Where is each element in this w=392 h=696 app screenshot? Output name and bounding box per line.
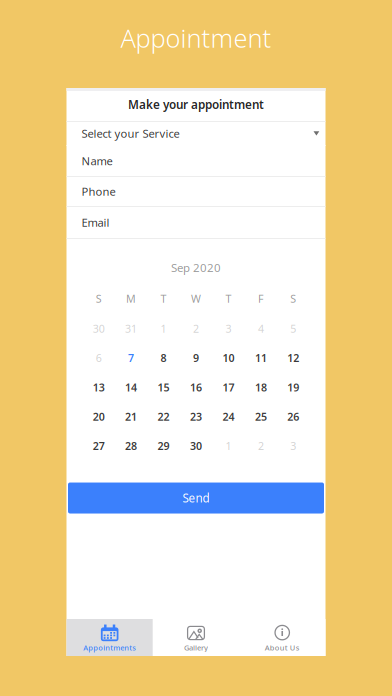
button[interactable]: 12 <box>277 343 310 373</box>
button[interactable]: 24 <box>212 402 245 431</box>
staticText: 23 <box>190 409 202 424</box>
staticText: 21 <box>125 409 137 424</box>
staticText: M <box>126 291 136 306</box>
staticText: 22 <box>158 409 170 424</box>
button[interactable]: 30 <box>180 431 212 460</box>
staticText: 29 <box>158 439 170 453</box>
staticText: 11 <box>255 351 267 365</box>
button[interactable]: 29 <box>147 431 180 460</box>
button[interactable]: 3 <box>212 314 245 343</box>
staticText: Gallery <box>184 642 208 653</box>
staticText: 9 <box>193 351 199 365</box>
staticText: Appointment <box>120 21 271 55</box>
staticText: 19 <box>287 380 299 394</box>
staticText: 28 <box>125 439 137 453</box>
staticText: 16 <box>190 380 202 394</box>
staticText: 4 <box>258 321 264 336</box>
staticText: Make your appointment <box>128 96 264 112</box>
button[interactable]: 25 <box>245 402 277 431</box>
staticText: 24 <box>222 409 234 424</box>
staticText: 2 <box>258 439 264 453</box>
button[interactable]: 8 <box>147 343 180 373</box>
staticText: 27 <box>93 439 105 453</box>
staticText: T <box>161 291 167 306</box>
button[interactable]: Select your Service <box>66 122 325 146</box>
button[interactable]: 31 <box>115 314 147 343</box>
button[interactable]: 16 <box>180 373 212 402</box>
button[interactable]: 2 <box>180 314 212 343</box>
staticText: 26 <box>287 409 299 424</box>
staticText: T <box>225 291 231 306</box>
staticText: 20 <box>93 409 105 424</box>
button[interactable]: 3 <box>277 431 310 460</box>
button[interactable]: 27 <box>82 431 115 460</box>
staticText: 17 <box>222 380 234 394</box>
button[interactable]: Appointments <box>66 619 153 656</box>
button[interactable]: 5 <box>277 314 310 343</box>
button[interactable]: 18 <box>245 373 277 402</box>
button[interactable]: Send <box>68 482 324 513</box>
staticText: 14 <box>125 380 137 394</box>
staticText: About Us <box>265 642 300 653</box>
button[interactable]: 13 <box>82 373 115 402</box>
staticText: F <box>258 291 264 306</box>
button[interactable]: 4 <box>245 314 277 343</box>
button[interactable]: 21 <box>115 402 147 431</box>
staticText: 12 <box>287 351 299 365</box>
staticText: Appointments <box>83 642 136 653</box>
staticText: 2 <box>193 321 199 336</box>
staticText: 25 <box>255 409 267 424</box>
staticText: 1 <box>161 321 167 336</box>
staticText: 31 <box>125 321 137 336</box>
button[interactable]: 15 <box>147 373 180 402</box>
button[interactable]: About Us <box>239 619 325 656</box>
staticText: S <box>96 291 102 306</box>
button[interactable]: 1 <box>147 314 180 343</box>
button[interactable]: 6 <box>82 343 115 373</box>
button[interactable]: 2 <box>245 431 277 460</box>
staticText: 13 <box>93 380 105 394</box>
button[interactable]: 11 <box>245 343 277 373</box>
button[interactable]: 23 <box>180 402 212 431</box>
staticText: 30 <box>190 439 202 453</box>
staticText: 8 <box>161 351 167 365</box>
button[interactable]: 7 <box>115 343 147 373</box>
staticText: 18 <box>255 380 267 394</box>
button[interactable]: 19 <box>277 373 310 402</box>
button[interactable]: Gallery <box>153 619 239 656</box>
staticText: Send <box>182 490 209 506</box>
button[interactable]: 30 <box>82 314 115 343</box>
button[interactable]: 9 <box>180 343 212 373</box>
staticText: 15 <box>158 380 170 394</box>
staticText: 3 <box>225 321 231 336</box>
button[interactable]: 14 <box>115 373 147 402</box>
staticText: 7 <box>128 351 134 365</box>
staticText: Phone <box>81 184 115 199</box>
staticText: Select your Service <box>81 126 179 141</box>
staticText: Email <box>81 215 109 230</box>
staticText: 6 <box>96 351 102 365</box>
button[interactable]: 1 <box>212 431 245 460</box>
button[interactable]: Phone <box>66 177 325 207</box>
button[interactable]: 17 <box>212 373 245 402</box>
staticText: Sep 2020 <box>171 260 221 275</box>
button[interactable]: Email <box>66 207 325 239</box>
staticText: Name <box>81 153 112 169</box>
staticText: S <box>290 291 296 306</box>
button[interactable]: 28 <box>115 431 147 460</box>
button[interactable]: 22 <box>147 402 180 431</box>
staticText: 5 <box>290 321 296 336</box>
staticText: 30 <box>93 321 105 336</box>
staticText: 1 <box>225 439 231 453</box>
button[interactable]: 26 <box>277 402 310 431</box>
button[interactable]: 20 <box>82 402 115 431</box>
staticText: 10 <box>222 351 234 365</box>
staticText: 3 <box>290 439 296 453</box>
button[interactable]: 10 <box>212 343 245 373</box>
staticText: W <box>191 291 201 306</box>
button[interactable]: Name <box>66 146 325 177</box>
